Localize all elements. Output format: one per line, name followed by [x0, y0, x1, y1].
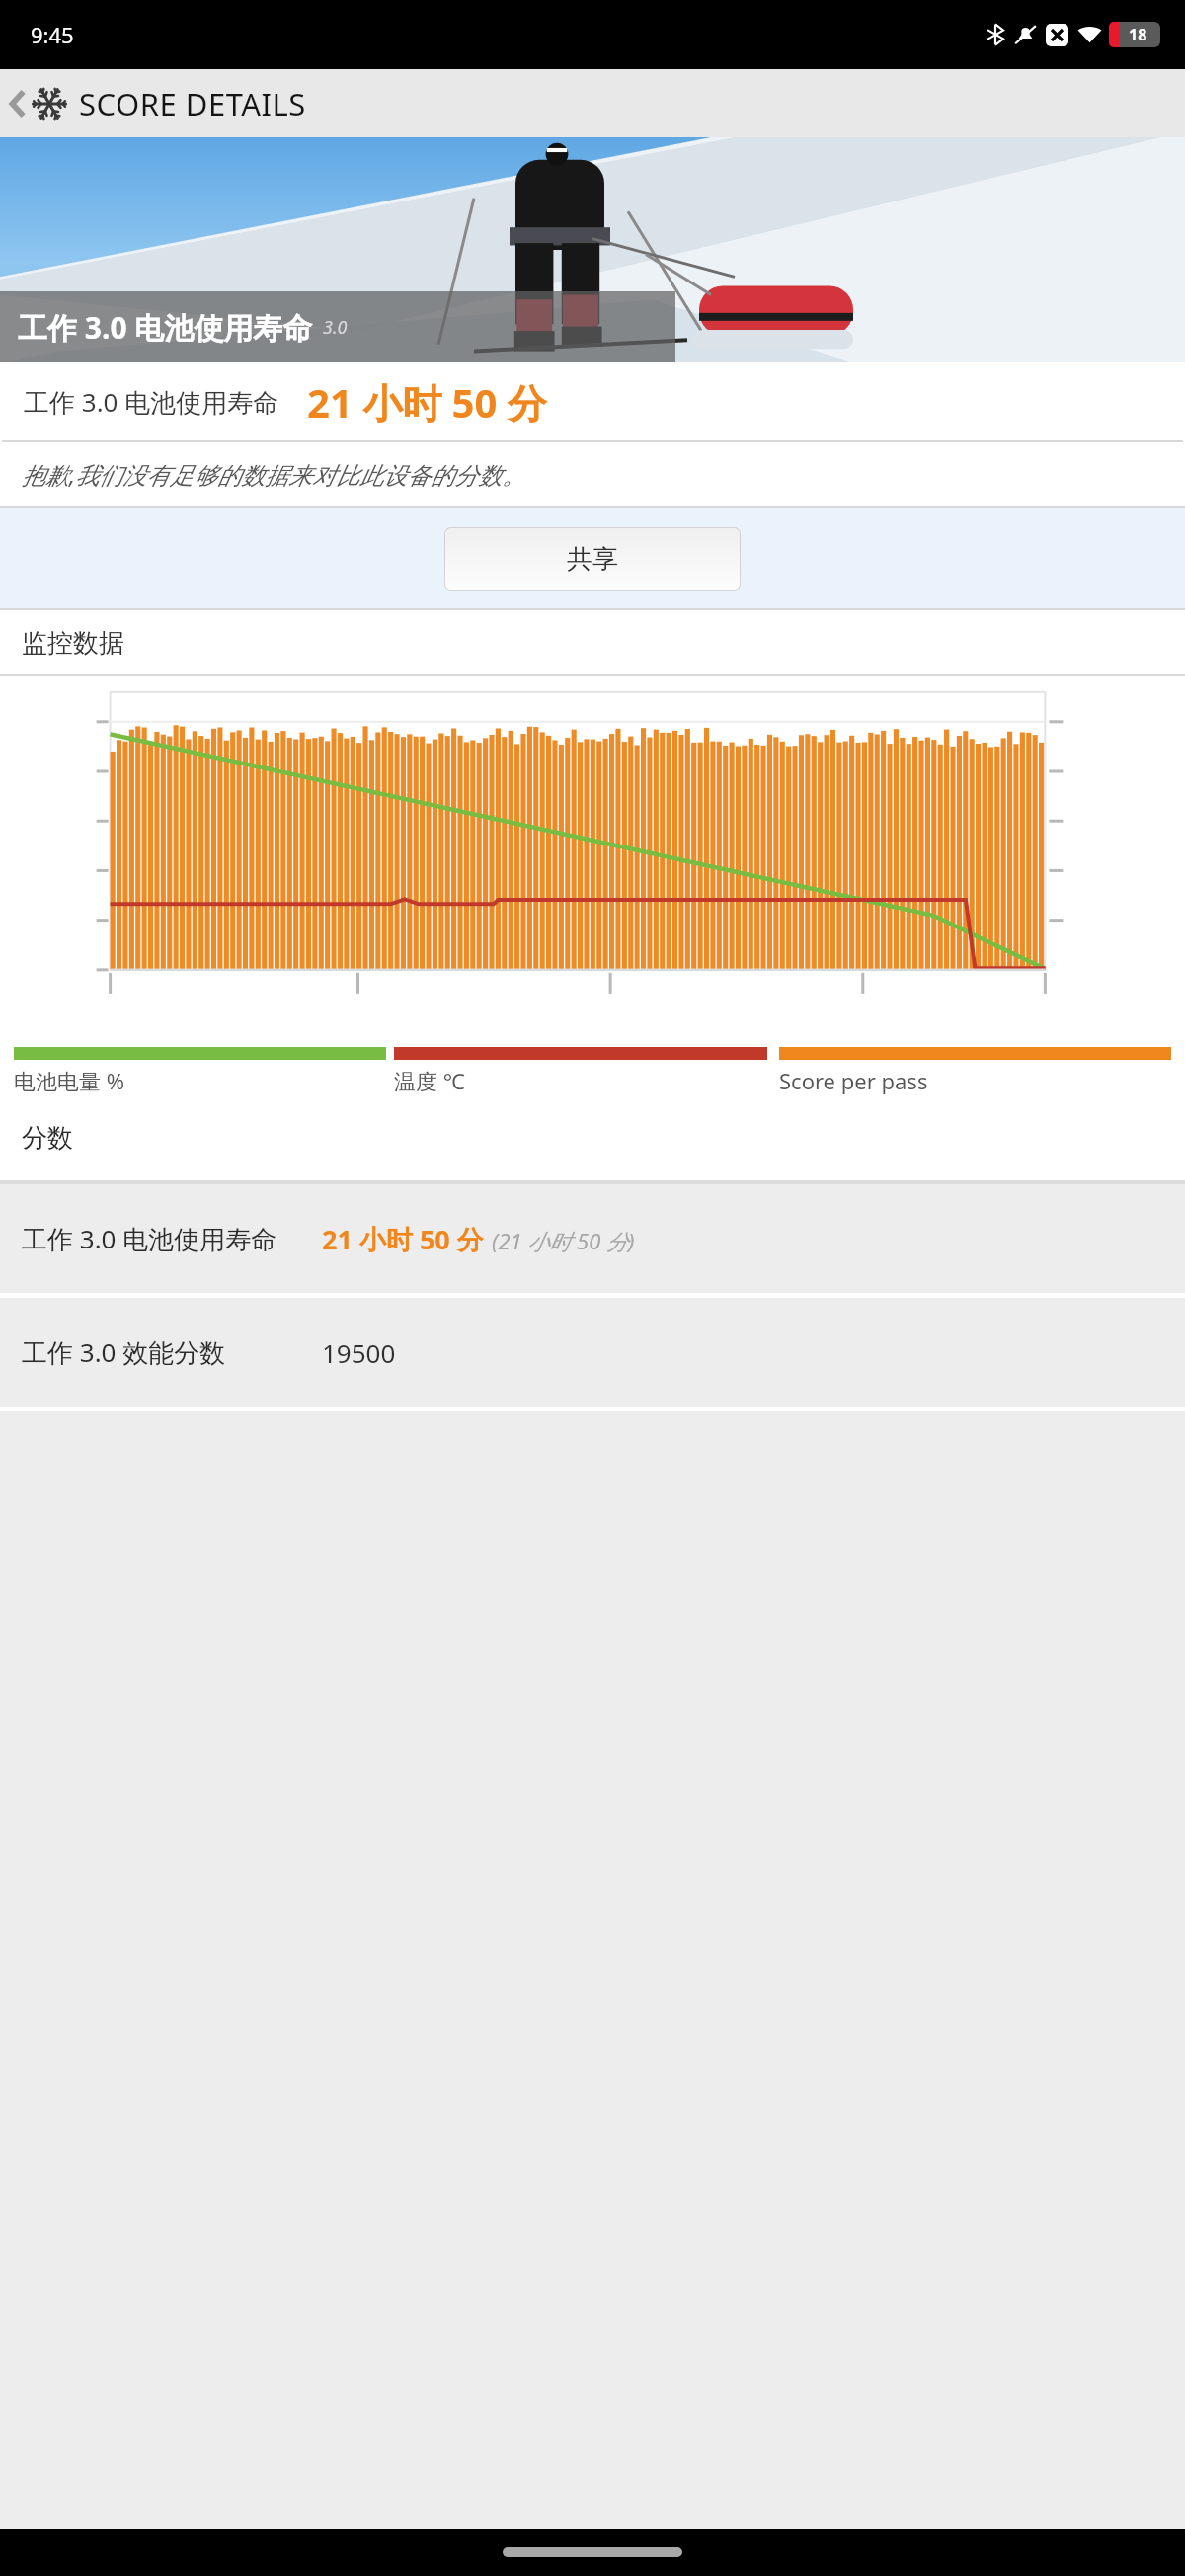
staticText: SCORE DETAILS — [79, 83, 306, 124]
staticText: 温度 ℃ — [394, 1066, 465, 1095]
staticText: 工作 3.0 电池使用寿命 — [22, 1221, 277, 1256]
staticText: 工作 3.0 电池使用寿命 — [24, 384, 279, 420]
staticText: 19500 — [322, 1335, 396, 1370]
other: Silent — [1014, 24, 1037, 45]
other: No SIM — [1046, 24, 1068, 46]
staticText: 监控数据 — [22, 627, 124, 660]
button[interactable]: 工作 3.0 电池使用寿命 — [0, 1184, 1185, 1293]
other: Back — [10, 88, 26, 120]
button[interactable]: 共享 — [444, 527, 741, 591]
other: Battery 18 percent — [1109, 22, 1160, 47]
staticText: (21 小时 50 分) — [492, 1226, 635, 1255]
staticText: 工作 3.0 电池使用寿命 — [18, 307, 313, 348]
other: Wi-Fi — [1077, 24, 1102, 45]
staticText: 9:45 — [31, 20, 74, 49]
staticText: 21 小时 50 分 — [322, 1221, 484, 1257]
staticText: 分数 — [22, 1122, 73, 1155]
button[interactable]: 工作 3.0 效能分数 — [0, 1298, 1185, 1407]
other: Home — [503, 2547, 682, 2557]
other: Bluetooth — [986, 24, 1005, 45]
staticText: 21 小时 50 分 — [307, 375, 547, 430]
staticText: 抱歉,我们没有足够的数据来对比此设备的分数。 — [22, 458, 526, 491]
staticText: 工作 3.0 效能分数 — [22, 1334, 226, 1370]
button[interactable]: Back — [0, 69, 1185, 137]
staticText: 电池电量 % — [14, 1066, 125, 1095]
staticText: 3.0 — [323, 315, 348, 340]
other: Snowflake — [32, 86, 67, 121]
staticText: Score per pass — [779, 1066, 928, 1095]
staticText: 18 — [1129, 24, 1147, 45]
staticText: 共享 — [567, 543, 618, 576]
